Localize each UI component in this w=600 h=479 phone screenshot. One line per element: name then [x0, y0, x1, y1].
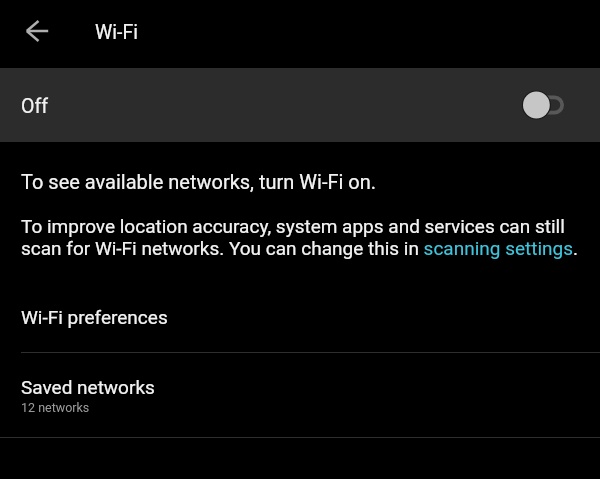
staticText: 12 networks [21, 400, 90, 415]
staticText: To see available networks, turn Wi-Fi on… [21, 170, 377, 194]
button[interactable]: Wi-Fi on/off [523, 88, 564, 122]
button[interactable]: Wi-Fi preferences [0, 290, 600, 343]
button[interactable]: Navigate up [13, 7, 61, 55]
staticText: Off [21, 95, 48, 118]
button[interactable]: Saved networks [0, 353, 600, 437]
staticText: Wi-Fi preferences [21, 306, 168, 328]
staticText: Wi-Fi [95, 21, 138, 44]
staticText: Saved networks [21, 376, 155, 398]
staticText: To improve location accuracy, system app… [21, 216, 579, 260]
button[interactable]: Off [0, 68, 600, 142]
